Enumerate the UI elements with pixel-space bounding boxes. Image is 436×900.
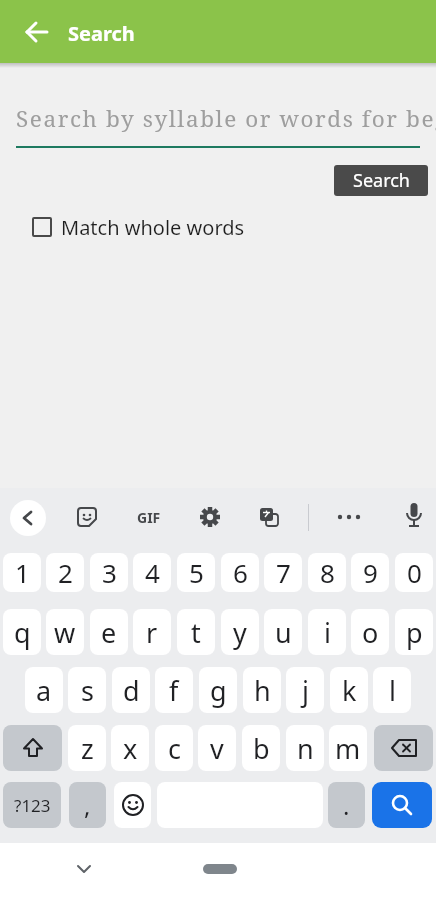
button[interactable]: 7 bbox=[264, 553, 302, 592]
staticText: p bbox=[406, 614, 423, 651]
button[interactable]: y bbox=[221, 609, 259, 655]
staticText: m bbox=[335, 730, 361, 767]
staticText: q bbox=[14, 614, 31, 651]
button[interactable] bbox=[372, 782, 432, 828]
staticText: k bbox=[342, 672, 357, 709]
staticText: z bbox=[81, 730, 94, 767]
button[interactable] bbox=[257, 505, 281, 529]
staticText: 0 bbox=[407, 555, 422, 590]
staticText: 1 bbox=[15, 555, 30, 590]
staticText: t bbox=[191, 614, 201, 651]
button[interactable]: h bbox=[243, 667, 281, 713]
staticText: Search bbox=[68, 20, 135, 47]
button[interactable]: b bbox=[242, 725, 280, 771]
button[interactable]: u bbox=[264, 609, 302, 655]
button[interactable] bbox=[114, 782, 151, 828]
staticText: ?123 bbox=[14, 794, 51, 817]
button[interactable]: g bbox=[199, 667, 237, 713]
button[interactable] bbox=[374, 725, 433, 771]
staticText: i bbox=[324, 614, 331, 651]
button[interactable]: 0 bbox=[395, 553, 433, 592]
staticText: h bbox=[254, 672, 271, 709]
staticText: 9 bbox=[363, 555, 378, 590]
button[interactable]: p bbox=[395, 609, 433, 655]
staticText: y bbox=[233, 614, 247, 651]
button[interactable]: k bbox=[330, 667, 368, 713]
button[interactable]: z bbox=[68, 725, 106, 771]
staticText: . bbox=[343, 789, 350, 822]
staticText: l bbox=[389, 672, 396, 709]
button[interactable]: n bbox=[286, 725, 324, 771]
staticText: a bbox=[36, 672, 52, 709]
button[interactable]: w bbox=[46, 609, 84, 655]
staticText: g bbox=[210, 672, 227, 709]
staticText: f bbox=[169, 672, 179, 709]
staticText: w bbox=[54, 614, 76, 651]
staticText: e bbox=[101, 614, 117, 651]
button[interactable] bbox=[10, 500, 46, 536]
staticText: 8 bbox=[320, 555, 335, 590]
staticText: Search by syllable or words for beginnin… bbox=[16, 103, 436, 134]
staticText: 5 bbox=[189, 555, 204, 590]
button[interactable]: i bbox=[308, 609, 346, 655]
button[interactable]: 3 bbox=[90, 553, 128, 592]
button[interactable]: d bbox=[112, 667, 150, 713]
button[interactable] bbox=[198, 505, 222, 529]
button[interactable] bbox=[400, 501, 428, 533]
button[interactable]: e bbox=[90, 609, 128, 655]
button[interactable]: f bbox=[155, 667, 193, 713]
staticText: r bbox=[146, 614, 158, 651]
staticText: b bbox=[253, 730, 270, 767]
staticText: n bbox=[297, 730, 314, 767]
button[interactable]: c bbox=[155, 725, 193, 771]
staticText: j bbox=[302, 672, 309, 709]
staticText: x bbox=[123, 730, 138, 767]
button[interactable]: s bbox=[68, 667, 106, 713]
staticText: 4 bbox=[145, 555, 160, 590]
staticText: , bbox=[84, 789, 91, 822]
staticText: d bbox=[123, 672, 140, 709]
button[interactable]: 6 bbox=[221, 553, 259, 592]
button[interactable] bbox=[70, 855, 98, 883]
button[interactable]: 1 bbox=[3, 553, 41, 592]
staticText: 2 bbox=[58, 555, 73, 590]
button[interactable]: t bbox=[177, 609, 215, 655]
staticText: GIF bbox=[137, 508, 161, 527]
staticText: 3 bbox=[102, 555, 117, 590]
button[interactable]: l bbox=[373, 667, 411, 713]
button[interactable] bbox=[3, 725, 62, 771]
staticText: v bbox=[210, 730, 224, 767]
staticText: Match whole words bbox=[61, 214, 245, 241]
button[interactable] bbox=[17, 12, 57, 52]
staticText: 7 bbox=[276, 555, 291, 590]
staticText: o bbox=[362, 614, 379, 651]
button[interactable]: q bbox=[3, 609, 41, 655]
button[interactable]: m bbox=[329, 725, 367, 771]
button[interactable]: ?123 bbox=[3, 782, 61, 828]
button[interactable]: . bbox=[328, 782, 365, 828]
button[interactable] bbox=[75, 505, 99, 529]
button[interactable]: Search bbox=[334, 165, 428, 196]
staticText: 6 bbox=[233, 555, 248, 590]
button[interactable]: o bbox=[351, 609, 389, 655]
staticText: c bbox=[168, 730, 181, 767]
button[interactable]: 2 bbox=[46, 553, 84, 592]
button[interactable]: , bbox=[69, 782, 106, 828]
button[interactable]: 4 bbox=[133, 553, 171, 592]
staticText: Search bbox=[353, 168, 410, 193]
button[interactable]: j bbox=[286, 667, 324, 713]
button[interactable]: 5 bbox=[177, 553, 215, 592]
button[interactable]: 9 bbox=[351, 553, 389, 592]
staticText: s bbox=[81, 672, 94, 709]
button[interactable] bbox=[203, 864, 237, 874]
button[interactable]: x bbox=[111, 725, 149, 771]
staticText: u bbox=[275, 614, 292, 651]
button[interactable]: a bbox=[25, 667, 63, 713]
button[interactable]: r bbox=[133, 609, 171, 655]
button[interactable] bbox=[335, 505, 363, 529]
button[interactable]: v bbox=[198, 725, 236, 771]
button[interactable]: 8 bbox=[308, 553, 346, 592]
button[interactable] bbox=[32, 217, 52, 237]
button[interactable]: GIF bbox=[130, 505, 168, 529]
